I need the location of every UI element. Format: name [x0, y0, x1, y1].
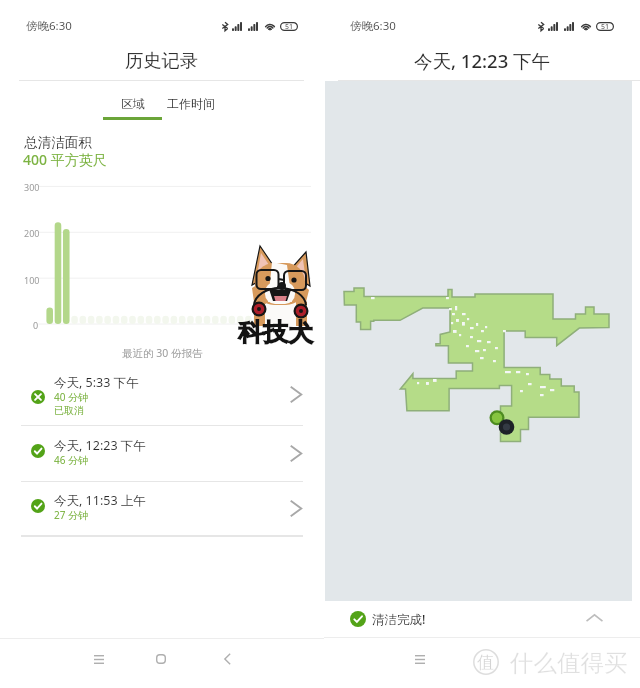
staticText: 今天, 11:53 上午 [54, 492, 146, 509]
staticText: 傍晚6:30 [350, 18, 396, 34]
staticText: 400 平方英尺 [23, 150, 107, 169]
staticText: 46 分钟 [54, 453, 89, 467]
staticText: 今天, 12:23 下午 [414, 48, 551, 73]
staticText: 今天, 5:33 下午 [54, 374, 139, 391]
button[interactable]: Back [528, 642, 562, 676]
staticText: 历史记录 [125, 49, 199, 72]
staticText: 200 [24, 227, 40, 239]
staticText: 清洁完成! [372, 611, 426, 628]
other: Expand details [585, 611, 604, 625]
staticText: 最近的 30 份报告 [122, 346, 203, 360]
staticText: 27 分钟 [54, 508, 89, 522]
staticText: 什么值得买 [510, 648, 628, 678]
staticText: 300 [24, 181, 40, 193]
staticText: 100 [24, 274, 40, 286]
button[interactable]: Recent apps [403, 642, 437, 676]
staticText: 区域 [121, 96, 145, 111]
button[interactable]: Home [464, 642, 498, 676]
button[interactable]: 清洁完成! [324, 601, 640, 638]
button[interactable]: 今天, 12:23 下午 [0, 425, 324, 481]
button[interactable]: 今天, 5:33 下午 [0, 369, 324, 425]
button[interactable]: Back [210, 642, 244, 676]
button[interactable]: 区域 [109, 96, 156, 119]
button[interactable]: Home [144, 642, 178, 676]
staticText: 51 [285, 22, 294, 31]
staticText: 值 [477, 652, 494, 673]
staticText: 40 分钟 [54, 390, 89, 404]
staticText: 科技犬 [238, 317, 313, 348]
button[interactable]: 工作时间 [162, 96, 220, 119]
staticText: 已取消 [54, 404, 84, 417]
staticText: 0 [33, 319, 39, 331]
button[interactable]: Recent apps [82, 642, 116, 676]
staticText: 傍晚6:30 [26, 18, 72, 34]
staticText: 51 [601, 22, 610, 31]
button[interactable]: 今天, 11:53 上午 [0, 480, 324, 536]
staticText: 工作时间 [167, 96, 215, 111]
staticText: 总清洁面积 [24, 134, 92, 151]
staticText: 今天, 12:23 下午 [54, 437, 146, 454]
